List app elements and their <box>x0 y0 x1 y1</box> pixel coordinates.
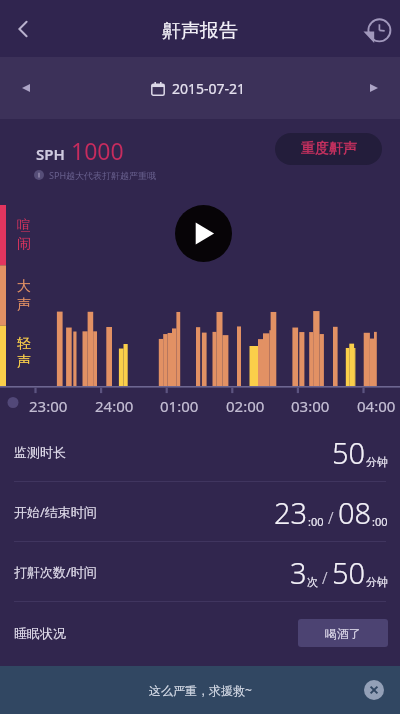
staticText: :00 <box>372 514 388 529</box>
staticText: 04:00 <box>357 396 396 416</box>
button[interactable]: 开始/结束时间 <box>0 482 400 541</box>
staticText: 分钟 <box>366 455 388 469</box>
staticText: 喧闹 <box>16 217 32 252</box>
staticText: 大声 <box>16 278 32 313</box>
staticText: 08 <box>338 493 372 532</box>
staticText: 50 <box>332 553 366 592</box>
staticText: :00 <box>308 514 324 529</box>
staticText: 24:00 <box>95 396 134 416</box>
staticText: SPH越大代表打鼾越严重哦 <box>49 169 157 181</box>
staticText: 23:00 <box>29 396 68 416</box>
button[interactable]: History <box>352 7 400 55</box>
button[interactable]: Play <box>175 205 232 262</box>
button[interactable]: Back <box>0 6 46 52</box>
button[interactable]: Next day <box>354 68 394 108</box>
staticText: 睡眠状况 <box>14 625 66 641</box>
staticText: SPH <box>36 144 65 164</box>
staticText: 03:00 <box>291 396 330 416</box>
staticText: 轻声 <box>16 335 32 370</box>
button[interactable]: Previous day <box>6 68 46 108</box>
button[interactable]: 监测时长 <box>0 422 400 481</box>
staticText: 喝酒了 <box>325 626 361 641</box>
staticText: 02:00 <box>226 396 265 416</box>
staticText: 重度鼾声 <box>301 140 357 158</box>
button[interactable]: 重度鼾声 <box>275 133 382 165</box>
staticText: 50 <box>332 433 366 472</box>
staticText: 这么严重，求援救~ <box>149 682 252 698</box>
staticText: 分钟 <box>366 575 388 589</box>
staticText: 1000 <box>71 135 124 166</box>
staticText: 2015-07-21 <box>172 79 246 98</box>
staticText: 次 <box>307 575 318 589</box>
button[interactable]: Close <box>358 674 390 706</box>
staticText: 01:00 <box>160 396 199 416</box>
button[interactable]: 打鼾次数/时间 <box>0 542 400 601</box>
staticText: 3 <box>290 553 307 592</box>
button[interactable]: 睡眠状况 <box>0 602 400 664</box>
button[interactable]: 喝酒了 <box>298 619 388 647</box>
staticText: / <box>328 507 334 529</box>
staticText: 打鼾次数/时间 <box>14 563 97 581</box>
staticText: 鼾声报告 <box>162 19 238 43</box>
staticText: 23 <box>274 493 308 532</box>
staticText: / <box>322 567 328 589</box>
staticText: 监测时长 <box>14 444 66 460</box>
staticText: 开始/结束时间 <box>14 503 97 521</box>
